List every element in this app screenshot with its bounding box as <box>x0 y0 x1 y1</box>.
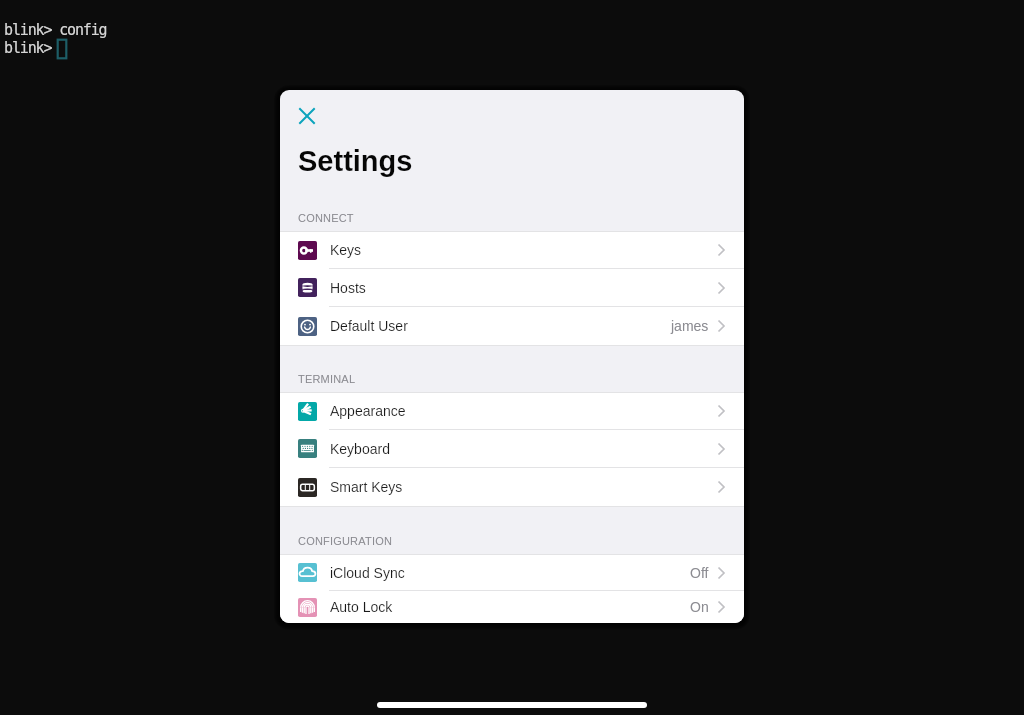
staticText: Keyboard <box>330 441 390 457</box>
staticText: iCloud Sync <box>330 565 405 581</box>
button[interactable]: Auto Lock <box>280 591 744 623</box>
staticText: blink> config <box>4 21 107 38</box>
staticText: james <box>671 318 709 334</box>
staticText: blink> <box>4 39 52 56</box>
staticText: Settings <box>298 145 413 177</box>
button[interactable]: iCloud Sync <box>280 555 744 591</box>
staticText: Appearance <box>330 403 406 419</box>
staticText: CONNECT <box>298 212 354 224</box>
staticText: Auto Lock <box>330 599 393 615</box>
staticText: On <box>690 599 709 615</box>
button[interactable]: Default User <box>280 307 744 345</box>
staticText: Default User <box>330 318 408 334</box>
staticText: Keys <box>330 242 362 258</box>
staticText: Off <box>690 565 709 581</box>
button[interactable]: Keys <box>280 232 744 269</box>
button[interactable]: Keyboard <box>280 430 744 468</box>
staticText: Hosts <box>330 280 366 296</box>
staticText: TERMINAL <box>298 373 356 385</box>
button[interactable]: Close <box>289 98 325 134</box>
staticText: Smart Keys <box>330 479 403 495</box>
staticText: CONFIGURATION <box>298 535 393 547</box>
button[interactable]: Hosts <box>280 269 744 307</box>
button[interactable]: Smart Keys <box>280 468 744 506</box>
button[interactable]: Appearance <box>280 393 744 430</box>
